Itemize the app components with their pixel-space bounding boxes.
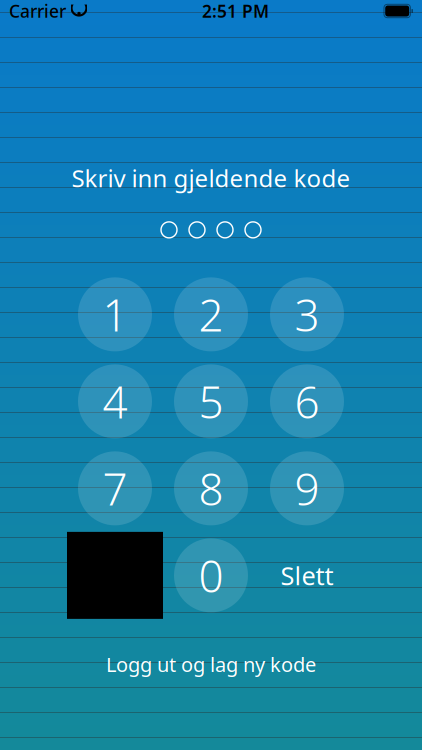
button[interactable]: 6 xyxy=(259,358,355,445)
staticText: 7 xyxy=(102,459,127,518)
staticText: 4 xyxy=(102,372,127,431)
staticText: 9 xyxy=(294,459,319,518)
staticText: 2 xyxy=(198,285,223,344)
staticText: 6 xyxy=(294,372,319,431)
button[interactable]: 7 xyxy=(67,445,163,532)
staticText: Slett xyxy=(280,559,333,592)
button[interactable]: 4 xyxy=(67,358,163,445)
staticText: 5 xyxy=(198,372,223,431)
button[interactable]: Logg ut og lag ny kode xyxy=(90,645,332,683)
staticText: 1 xyxy=(102,285,127,344)
button[interactable]: 9 xyxy=(259,445,355,532)
button[interactable]: Slett xyxy=(259,532,355,619)
button[interactable]: 2 xyxy=(163,271,259,358)
button[interactable]: 1 xyxy=(67,271,163,358)
button[interactable]: 5 xyxy=(163,358,259,445)
staticText: 0 xyxy=(198,546,223,605)
staticText: Logg ut og lag ny kode xyxy=(106,651,316,677)
staticText: 3 xyxy=(294,285,319,344)
button[interactable]: 3 xyxy=(259,271,355,358)
staticText: Skriv inn gjeldende kode xyxy=(71,162,350,194)
button[interactable]: 0 xyxy=(163,532,259,619)
staticText: 8 xyxy=(198,459,223,518)
staticText: 2:51 PM xyxy=(202,0,269,22)
staticText: Carrier xyxy=(9,0,66,22)
button[interactable]: 8 xyxy=(163,445,259,532)
